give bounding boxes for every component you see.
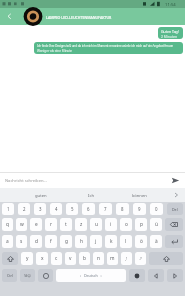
button[interactable]: !#☺: [20, 269, 35, 282]
button[interactable]: l: [120, 235, 132, 248]
staticText: 1: [7, 206, 10, 212]
button[interactable]: Guten Tag!: [158, 27, 183, 39]
staticText: v: [69, 255, 72, 262]
button[interactable]: 4: [50, 203, 62, 215]
button[interactable]: [149, 252, 183, 265]
staticText: s: [20, 238, 23, 245]
staticText: 4: [55, 206, 58, 212]
staticText: 8: [121, 206, 124, 212]
button[interactable]: h: [75, 235, 87, 248]
staticText: x: [41, 255, 44, 262]
staticText: g: [65, 238, 68, 245]
staticText: m: [110, 255, 115, 262]
button[interactable]: LAMPEO LED-LEUCHTENMANUFAKTUR: [0, 8, 185, 25]
button[interactable]: v: [65, 252, 76, 265]
staticText: 3: [39, 206, 42, 212]
button[interactable]: 8: [116, 203, 129, 215]
staticText: o: [125, 221, 128, 228]
button[interactable]: ‹ Deutsch ›: [56, 269, 126, 282]
staticText: y: [26, 255, 29, 262]
button[interactable]: ä: [150, 235, 162, 248]
staticText: z: [80, 221, 83, 228]
button[interactable]: 0: [150, 203, 163, 215]
button[interactable]: [148, 269, 164, 282]
button[interactable]: [129, 269, 145, 282]
staticText: Weniger als eine Minute: [37, 49, 73, 53]
button[interactable]: [165, 235, 183, 248]
staticText: Ich finde Ihre Designs toll, und da ich …: [37, 44, 174, 48]
button[interactable]: k: [105, 235, 117, 248]
button[interactable]: n: [93, 252, 104, 265]
button[interactable]: .?: [135, 252, 146, 265]
staticText: k: [110, 238, 113, 245]
staticText: 2 Minuten: [161, 34, 178, 39]
staticText: t: [65, 221, 67, 228]
button[interactable]: e: [30, 218, 42, 231]
button[interactable]: d: [30, 235, 42, 248]
staticText: c: [55, 255, 58, 262]
button[interactable]: 1: [2, 203, 14, 215]
button[interactable]: ü: [150, 218, 162, 231]
staticText: u: [95, 221, 98, 228]
button[interactable]: guten: [35, 193, 47, 199]
button[interactable]: ,!: [121, 252, 132, 265]
button[interactable]: ö: [135, 235, 147, 248]
staticText: w: [20, 221, 24, 228]
button[interactable]: t: [60, 218, 72, 231]
staticText: a: [6, 238, 9, 245]
staticText: i: [110, 221, 112, 228]
button[interactable]: 2: [18, 203, 30, 215]
button[interactable]: [167, 269, 183, 282]
button[interactable]: f: [45, 235, 57, 248]
staticText: f: [50, 238, 52, 245]
button[interactable]: 3: [34, 203, 46, 215]
button[interactable]: 9: [133, 203, 146, 215]
button[interactable]: z: [75, 218, 87, 231]
button[interactable]: q: [2, 218, 13, 231]
button[interactable]: [2, 252, 18, 265]
button[interactable]: r: [45, 218, 57, 231]
button[interactable]: Ich finde Ihre Designs toll, und da ich …: [34, 42, 183, 54]
button[interactable]: können: [132, 193, 147, 199]
button[interactable]: g: [60, 235, 72, 248]
staticText: 11:54: [165, 2, 176, 8]
button[interactable]: [165, 218, 183, 231]
staticText: p: [140, 221, 143, 228]
staticText: 9: [138, 206, 141, 212]
button[interactable]: u: [90, 218, 102, 231]
staticText: ü: [155, 221, 158, 228]
button[interactable]: 5: [66, 203, 78, 215]
staticText: r: [50, 221, 52, 228]
staticText: !#☺: [24, 273, 32, 278]
staticText: j: [95, 238, 97, 245]
button[interactable]: s: [16, 235, 27, 248]
button[interactable]: 7: [99, 203, 112, 215]
staticText: Guten Tag!: [161, 29, 179, 34]
button[interactable]: a: [2, 235, 13, 248]
button[interactable]: i: [105, 218, 117, 231]
staticText: ‹ Deutsch ›: [80, 273, 102, 278]
button[interactable]: Del: [167, 203, 183, 215]
button[interactable]: o: [120, 218, 132, 231]
staticText: b: [83, 255, 86, 262]
button[interactable]: y: [21, 252, 33, 265]
button[interactable]: j: [90, 235, 102, 248]
staticText: l: [125, 238, 127, 245]
staticText: 2: [23, 206, 26, 212]
button[interactable]: [38, 269, 53, 282]
button[interactable]: x: [36, 252, 48, 265]
staticText: 5: [71, 206, 74, 212]
staticText: d: [35, 238, 38, 245]
staticText: 7: [104, 206, 107, 212]
button[interactable]: 6: [82, 203, 95, 215]
button[interactable]: p: [135, 218, 147, 231]
button[interactable]: Ctrl: [2, 269, 17, 282]
button[interactable]: Ich: [88, 193, 95, 199]
staticText: q: [6, 221, 9, 228]
button[interactable]: b: [79, 252, 90, 265]
button[interactable]: [171, 177, 180, 184]
button[interactable]: m: [107, 252, 118, 265]
button[interactable]: w: [16, 218, 27, 231]
staticText: e: [35, 221, 38, 228]
button[interactable]: c: [51, 252, 62, 265]
